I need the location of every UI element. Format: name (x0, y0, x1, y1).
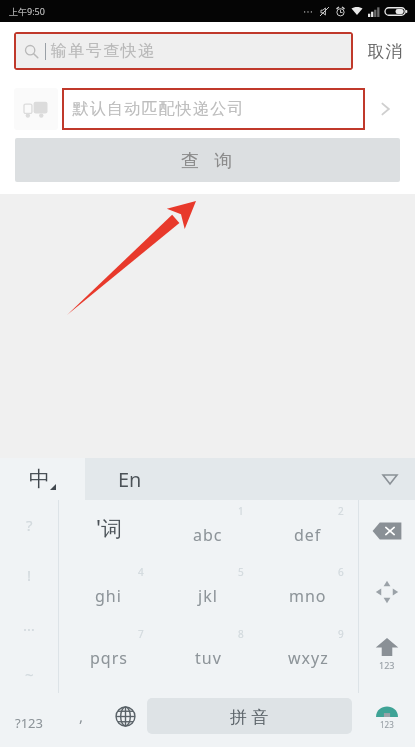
button[interactable]: Switch language (103, 685, 147, 747)
staticText: tuv (195, 647, 222, 669)
button[interactable]: 5 (158, 561, 258, 623)
button[interactable]: Enter (359, 685, 415, 747)
button[interactable]: Shift numbers (359, 623, 415, 685)
staticText: ? (26, 515, 33, 535)
button[interactable]: En (85, 458, 415, 500)
button[interactable]: Chinese input (0, 458, 85, 500)
staticText: mno (289, 585, 327, 607)
staticText: wxyz (288, 647, 329, 669)
staticText: En (118, 466, 142, 493)
button[interactable]: Backspace (359, 500, 415, 561)
staticText: ?123 (15, 714, 43, 732)
staticText: 4 (138, 565, 144, 579)
staticText: jkl (198, 585, 218, 607)
button[interactable]: 拼 音 (147, 698, 352, 734)
button[interactable]: 6 (258, 561, 358, 623)
staticText: 拼 音 (230, 705, 269, 728)
button[interactable]: 8 (158, 623, 258, 685)
staticText: 中 (29, 466, 50, 492)
button[interactable]: 取消 (367, 41, 403, 62)
staticText: 123 (380, 719, 394, 730)
other: Hide keyboard (383, 475, 397, 484)
staticText: ~ (25, 664, 34, 684)
staticText: ! (27, 565, 32, 585)
button[interactable]: '词 (59, 500, 158, 561)
button[interactable]: 1 (158, 500, 258, 561)
staticText: '词 (96, 514, 122, 543)
button[interactable]: 输单号查快递 (14, 32, 353, 70)
staticText: ghi (95, 585, 122, 607)
staticText: 默认自动匹配快递公司 (72, 99, 244, 119)
button[interactable]: 查 询 (15, 138, 400, 182)
button[interactable]: 4 (59, 561, 158, 623)
staticText: 取消 (367, 41, 403, 62)
staticText: 查 询 (181, 148, 235, 173)
staticText: , (79, 706, 84, 726)
staticText: 2 (338, 504, 344, 518)
button[interactable]: 7 (59, 623, 158, 685)
button[interactable]: 2 (258, 500, 358, 561)
staticText: abc (193, 524, 223, 546)
staticText: 1 (238, 504, 244, 518)
staticText: pqrs (90, 647, 128, 669)
staticText: 5 (238, 565, 244, 579)
staticText: 输单号查快递 (50, 41, 155, 61)
staticText: 上午9:50 (9, 5, 45, 17)
staticText: 9 (338, 627, 344, 641)
button[interactable]: , (59, 685, 103, 747)
staticText: 7 (138, 627, 144, 641)
button[interactable]: Cursor control (359, 561, 415, 623)
staticText: … (23, 615, 35, 635)
staticText: 8 (238, 627, 244, 641)
button[interactable]: ?123 (0, 698, 58, 747)
button[interactable]: 默认自动匹配快递公司 (14, 80, 405, 138)
staticText: 123 (379, 659, 395, 671)
staticText: def (294, 524, 322, 546)
button[interactable]: 9 (258, 623, 358, 685)
staticText: 6 (338, 565, 344, 579)
